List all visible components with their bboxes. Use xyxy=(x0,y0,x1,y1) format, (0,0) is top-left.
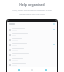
button[interactable] xyxy=(9,38,55,41)
button[interactable]: Home xyxy=(17,68,21,72)
button[interactable] xyxy=(9,58,55,61)
staticText: simple place you can trust xyxy=(0,13,64,16)
staticText: Help organised xyxy=(0,2,64,7)
button[interactable]: Search xyxy=(9,23,55,25)
button[interactable] xyxy=(9,33,55,36)
button[interactable] xyxy=(9,63,55,66)
button[interactable] xyxy=(9,28,55,31)
button[interactable] xyxy=(9,53,55,56)
staticText: Lists, notes and projects together in on… xyxy=(0,9,64,12)
button[interactable] xyxy=(9,48,55,51)
button[interactable] xyxy=(9,43,55,46)
button[interactable]: Profile xyxy=(44,68,48,72)
button[interactable]: Lists xyxy=(30,68,34,72)
